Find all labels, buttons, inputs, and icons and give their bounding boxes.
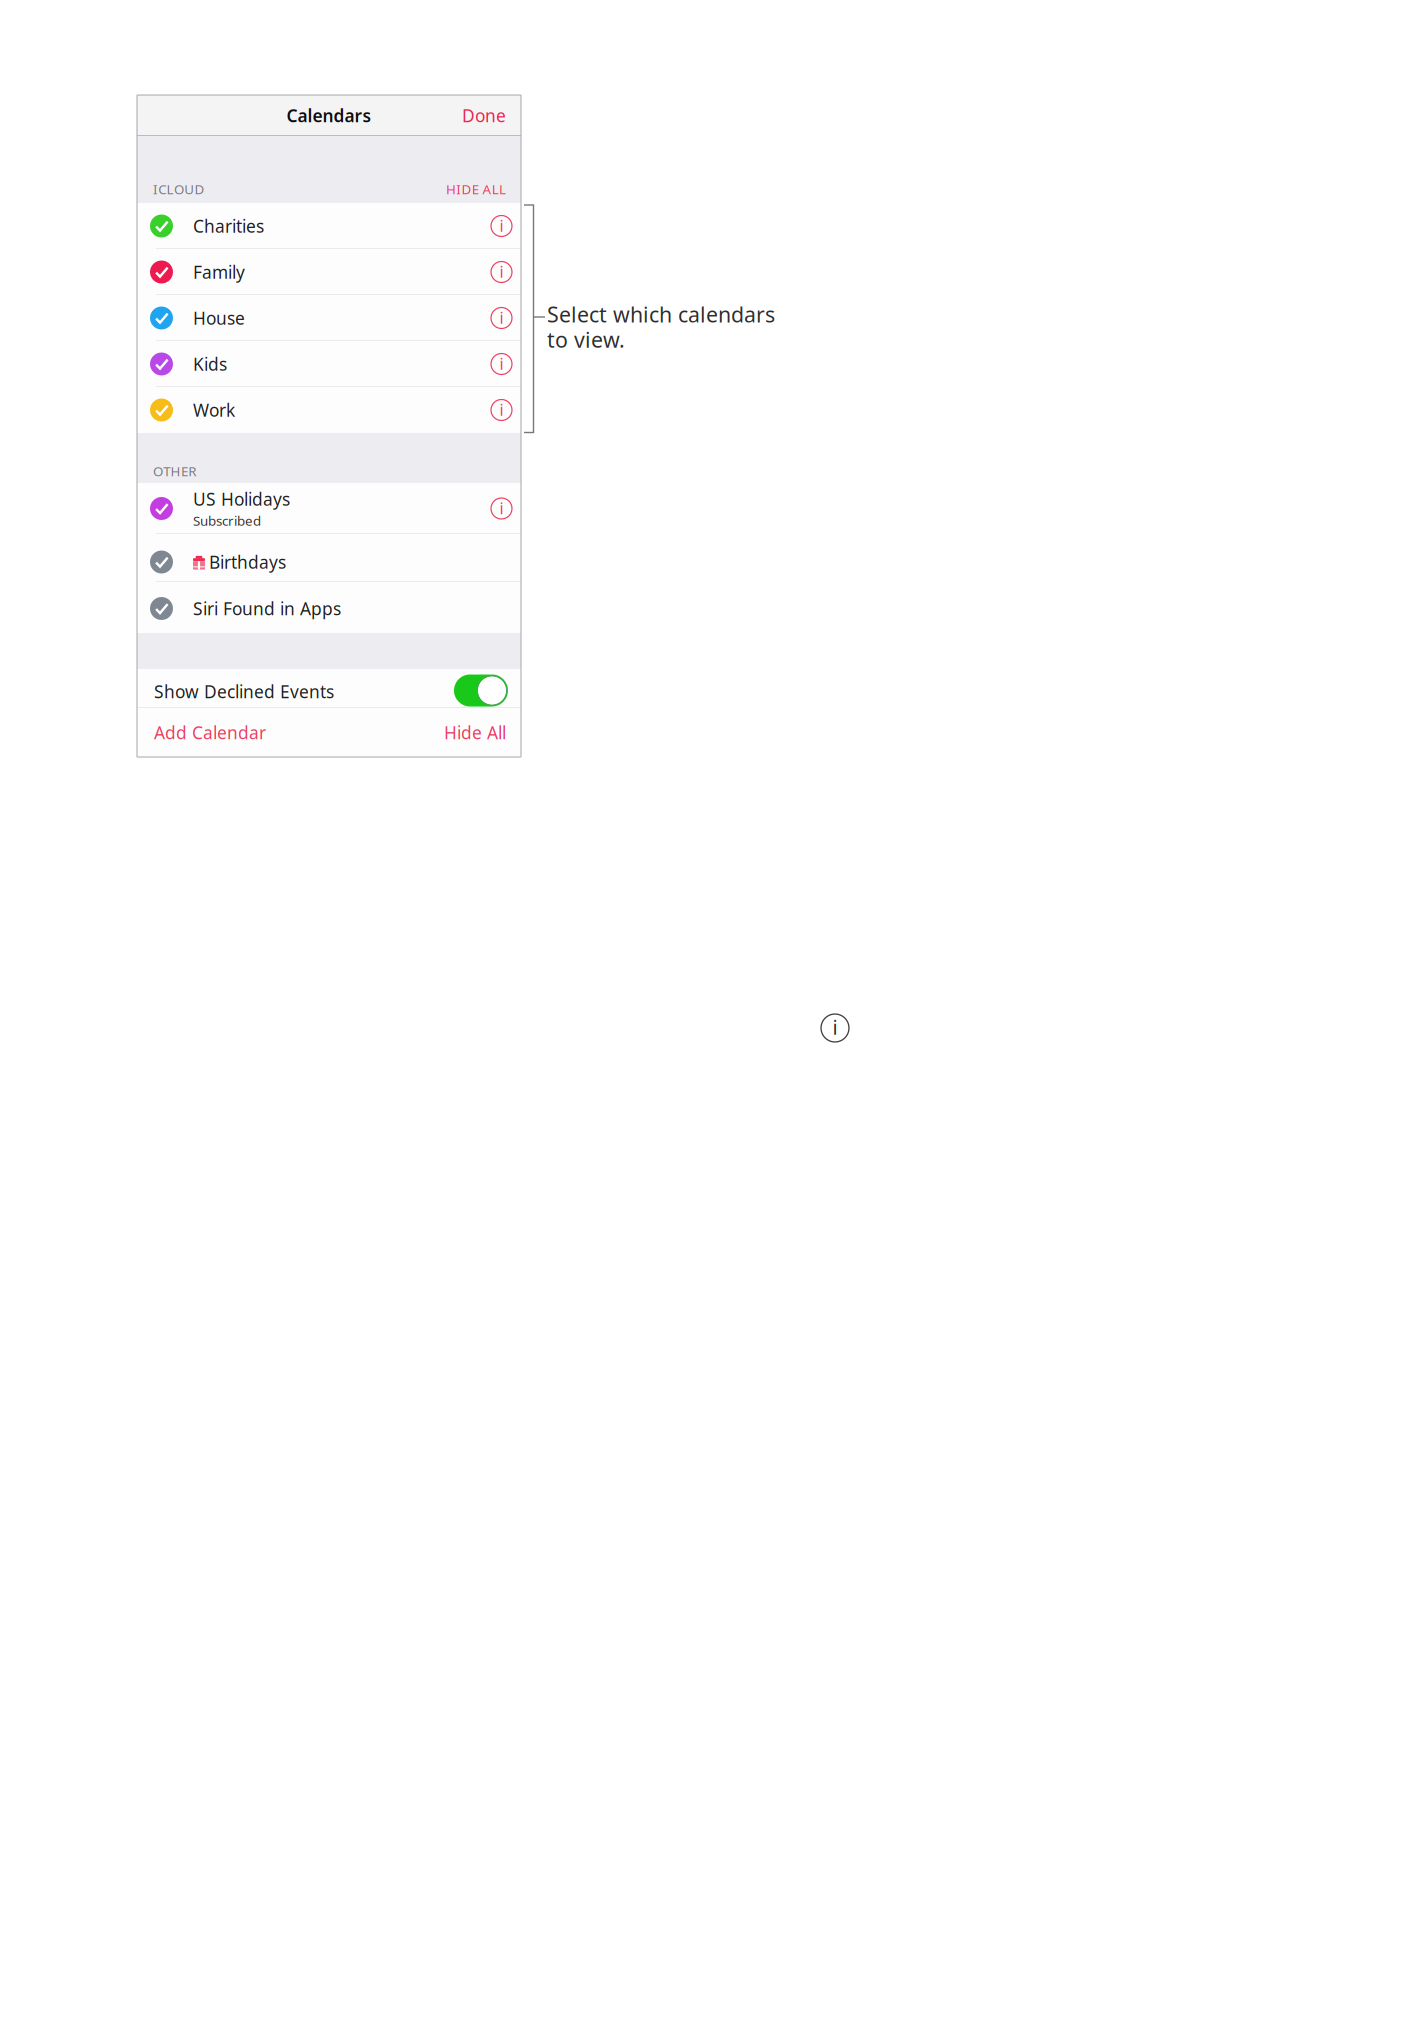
staticText: i <box>499 307 503 328</box>
button[interactable]: Hide All <box>444 712 506 753</box>
staticText: Subscribed <box>193 512 261 529</box>
button[interactable]: Charities details <box>484 208 519 243</box>
button[interactable]: Work details <box>484 392 519 427</box>
button[interactable]: Family details <box>484 254 519 289</box>
staticText: i <box>832 1014 837 1040</box>
staticText: ICLOUD <box>153 180 204 198</box>
staticText: OTHER <box>153 462 196 480</box>
button[interactable]: Charities <box>137 203 521 249</box>
staticText: Work <box>193 398 235 421</box>
button[interactable]: House details <box>484 300 519 335</box>
button[interactable]: Add Calendar <box>154 712 266 753</box>
button[interactable]: HIDE ALL <box>446 180 506 198</box>
button[interactable]: Kids <box>137 341 521 387</box>
button[interactable]: Siri Found in Apps <box>137 582 521 633</box>
staticText: Calendars <box>286 104 371 127</box>
staticText: Siri Found in Apps <box>193 597 341 620</box>
button[interactable]: Info <box>813 1006 857 1050</box>
button[interactable]: Birthdays <box>137 534 521 582</box>
button[interactable]: Done <box>457 97 511 134</box>
staticText: Done <box>462 104 506 127</box>
staticText: Family <box>193 260 245 283</box>
staticText: i <box>499 261 503 282</box>
staticText: i <box>499 497 503 519</box>
staticText: Select which calendars to view. <box>547 300 775 354</box>
button[interactable]: US Holidays details <box>484 491 519 526</box>
staticText: Add Calendar <box>154 721 266 744</box>
button[interactable]: House <box>137 295 521 341</box>
staticText: i <box>499 399 503 420</box>
button[interactable]: Family <box>137 249 521 295</box>
staticText: US Holidays <box>193 488 290 511</box>
staticText: Kids <box>193 352 227 375</box>
button[interactable]: US Holidays <box>137 483 521 534</box>
staticText: Charities <box>193 214 264 237</box>
staticText: Birthdays <box>209 550 286 573</box>
button[interactable]: Work <box>137 387 521 433</box>
staticText: HIDE ALL <box>446 180 506 198</box>
staticText: i <box>499 353 503 374</box>
staticText: i <box>499 215 503 236</box>
staticText: Show Declined Events <box>154 680 334 703</box>
button[interactable]: Kids details <box>484 346 519 381</box>
staticText: House <box>193 306 245 329</box>
staticText: Hide All <box>444 721 506 744</box>
button[interactable]: Show Declined Events <box>137 669 521 708</box>
